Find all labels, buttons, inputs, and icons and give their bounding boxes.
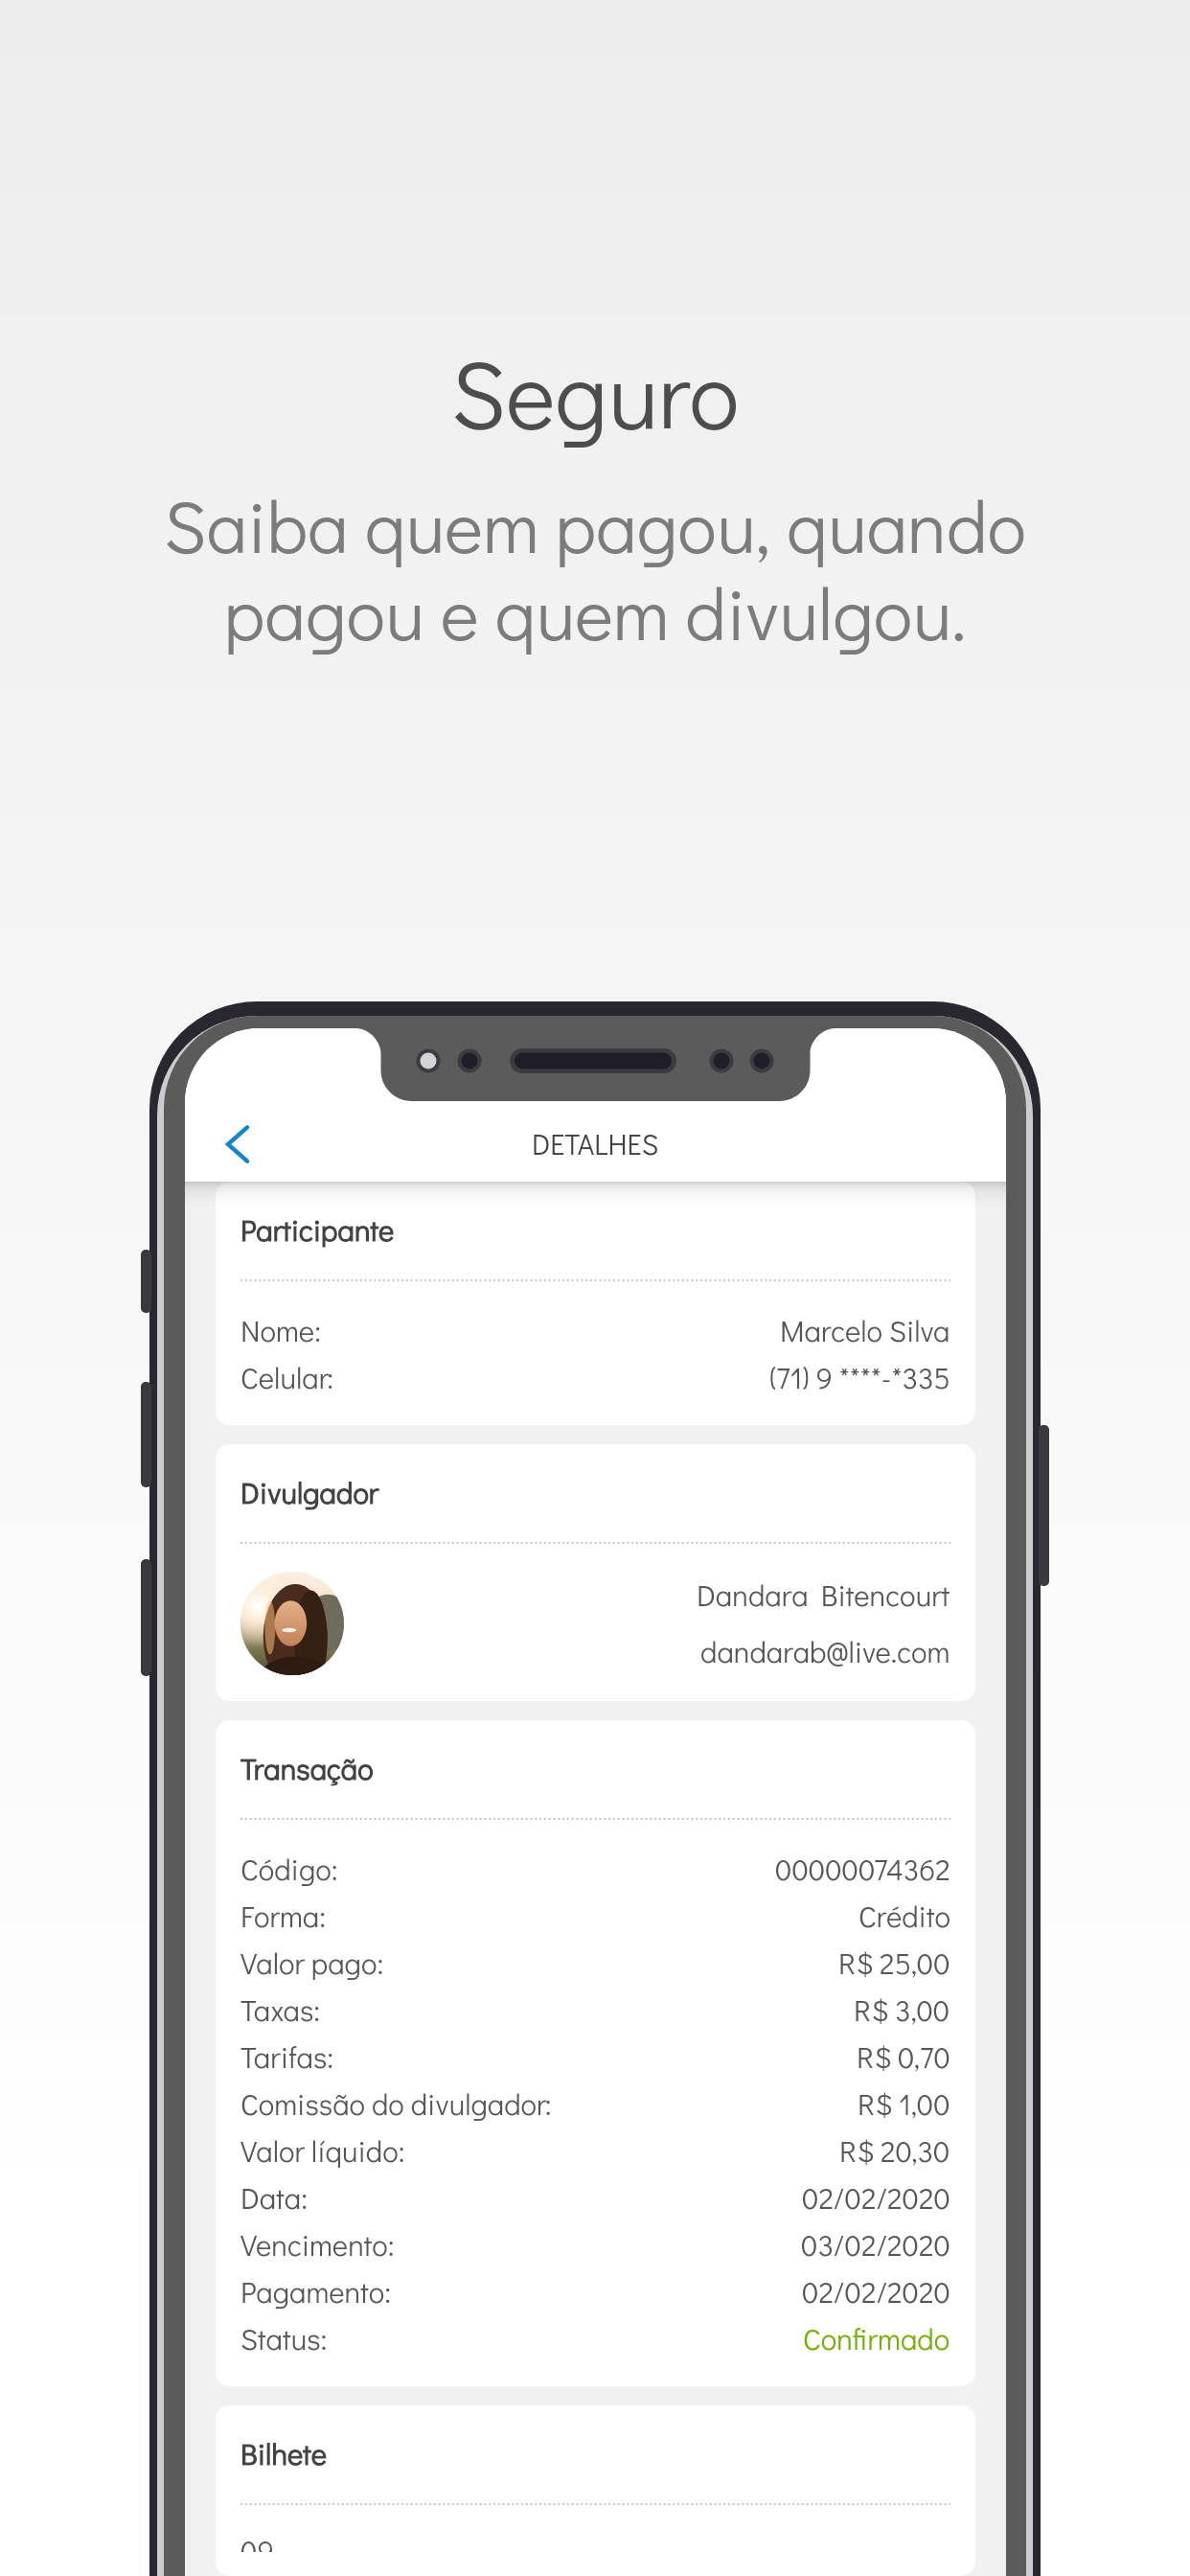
staticText: R$ 1,00	[858, 2084, 950, 2124]
staticText: R$ 3,00	[854, 1990, 950, 2030]
staticText: Pagamento:	[240, 2272, 392, 2311]
staticText: 02/02/2020	[802, 2272, 950, 2311]
staticText: 09	[240, 2531, 274, 2552]
staticText: 02/02/2020	[802, 2178, 950, 2218]
staticText: Participante	[240, 1210, 395, 1250]
staticText: R$ 20,30	[839, 2131, 950, 2171]
staticText: Taxas:	[240, 1990, 321, 2030]
staticText: Nome:	[240, 1311, 321, 1350]
staticText: (71) 9 ****-*335	[769, 1358, 950, 1397]
button[interactable]: Participante	[216, 1182, 975, 1425]
staticText: Forma:	[240, 1897, 327, 1936]
staticText: Transação	[240, 1749, 374, 1788]
staticText: Código:	[240, 1850, 338, 1889]
staticText: Seguro	[0, 330, 1190, 452]
staticText: Valor líquido:	[240, 2131, 405, 2171]
staticText: Data:	[240, 2178, 308, 2218]
staticText: Crédito	[858, 1897, 950, 1936]
staticText: R$ 25,00	[838, 1943, 950, 1983]
staticText: Dandara Bitencourt	[697, 1575, 950, 1615]
button[interactable]: Back	[206, 1113, 269, 1176]
staticText: Bilhete	[240, 2434, 328, 2473]
staticText: Confirmado	[803, 2319, 950, 2358]
staticText: Divulgador	[240, 1473, 379, 1512]
staticText: Saiba quem pagou, quando pagou e quem di…	[0, 477, 1190, 659]
staticText: DETALHES	[532, 1125, 659, 1162]
staticText: dandarab@live.com	[700, 1632, 950, 1671]
staticText: R$ 0,70	[857, 2037, 950, 2077]
button[interactable]: Divulgador	[216, 1444, 975, 1701]
button[interactable]: Bilhete	[216, 2405, 975, 2576]
staticText: Marcelo Silva	[780, 1311, 950, 1350]
staticText: Vencimento:	[240, 2225, 395, 2265]
staticText: Tarifas:	[240, 2037, 334, 2077]
staticText: Valor pago:	[240, 1943, 384, 1983]
staticText: Celular:	[240, 1358, 334, 1397]
staticText: 00000074362	[775, 1850, 950, 1889]
staticText: 03/02/2020	[801, 2225, 950, 2265]
staticText: Status:	[240, 2319, 328, 2358]
button[interactable]: Transação	[216, 1720, 975, 2386]
staticText: Comissão do divulgador:	[240, 2084, 552, 2124]
